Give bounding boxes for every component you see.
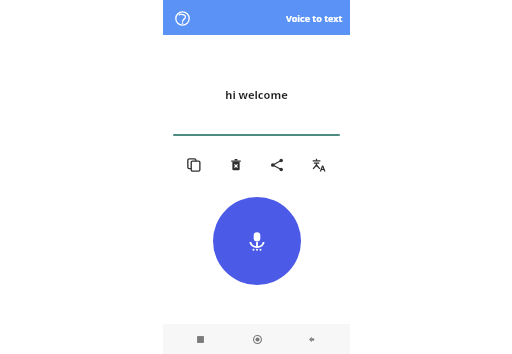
button[interactable]: Start voice input [213,197,301,285]
button[interactable]: Share [265,153,289,177]
button[interactable]: Back [302,328,324,350]
button[interactable]: Home [246,328,268,350]
button[interactable]: Delete [224,153,248,177]
staticText: hi welcome [225,87,288,102]
button[interactable]: Voice to text [286,12,350,24]
staticText: Voice to text [286,12,343,24]
button[interactable]: Copy [182,153,206,177]
button[interactable]: Translate [307,153,331,177]
button[interactable]: Recents [189,328,211,350]
button[interactable]: Help [169,5,195,31]
